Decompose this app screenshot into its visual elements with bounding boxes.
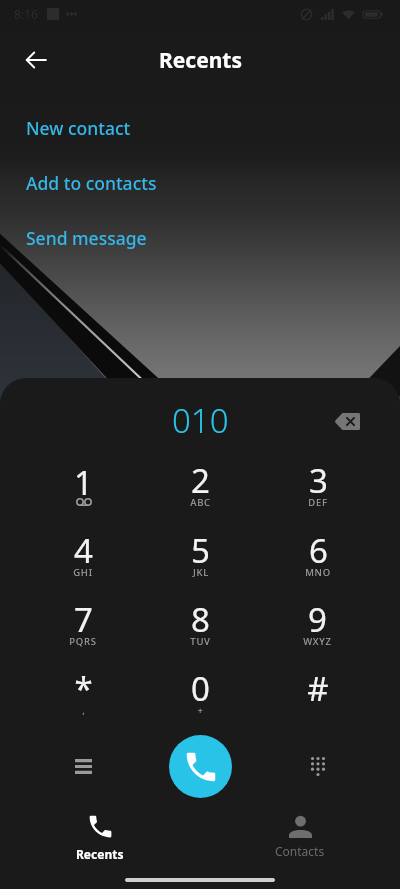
staticText: Recents xyxy=(159,46,242,75)
button[interactable]: * xyxy=(24,660,142,729)
button[interactable]: New contact xyxy=(0,100,400,155)
button[interactable]: Dialpad xyxy=(294,742,342,790)
staticText: # xyxy=(307,666,329,711)
staticText: WXYZ xyxy=(303,635,332,648)
staticText: New contact xyxy=(26,116,131,140)
staticText: 1 xyxy=(74,460,93,505)
staticText: TUV xyxy=(190,635,211,648)
staticText: ABC xyxy=(190,496,211,509)
staticText: 3 xyxy=(309,458,328,503)
staticText: 7 xyxy=(74,597,93,642)
button[interactable]: # xyxy=(259,660,376,729)
staticText: 8 xyxy=(191,597,210,642)
staticText: JKL xyxy=(193,566,209,579)
staticText: 010 xyxy=(172,398,229,443)
staticText: GHI xyxy=(73,566,93,579)
button[interactable]: 4 xyxy=(24,522,142,591)
staticText: Recents xyxy=(76,846,124,862)
button[interactable]: 2 xyxy=(142,451,259,522)
button[interactable]: 8 xyxy=(142,591,259,660)
staticText: Add to contacts xyxy=(26,171,157,195)
button[interactable]: Back xyxy=(12,36,60,84)
staticText: 8:16 xyxy=(14,6,38,22)
button[interactable]: 5 xyxy=(142,522,259,591)
staticText: 0 xyxy=(191,666,210,711)
button[interactable]: 9 xyxy=(259,591,376,660)
staticText: * xyxy=(74,666,93,711)
button[interactable]: Call xyxy=(169,735,232,798)
button[interactable]: 1 xyxy=(24,451,142,522)
button[interactable]: 7 xyxy=(24,591,142,660)
button[interactable]: 0 xyxy=(142,660,259,729)
button[interactable]: Add to contacts xyxy=(0,155,400,210)
staticText: Send message xyxy=(26,226,147,250)
staticText: , xyxy=(82,704,86,717)
staticText: 5 xyxy=(191,528,210,573)
staticText: 2 xyxy=(191,458,210,503)
button[interactable]: 6 xyxy=(259,522,376,591)
button[interactable]: Contacts xyxy=(200,808,400,866)
staticText: 6 xyxy=(309,528,328,573)
staticText: + xyxy=(197,704,204,717)
staticText: 4 xyxy=(74,528,93,573)
staticText: MNO xyxy=(305,566,331,579)
staticText: 9 xyxy=(308,597,327,642)
staticText: PQRS xyxy=(69,635,97,648)
staticText: Contacts xyxy=(275,843,325,859)
button[interactable]: Backspace xyxy=(327,401,367,441)
button[interactable]: More options xyxy=(59,742,107,790)
staticText: DEF xyxy=(308,496,328,509)
button[interactable]: 3 xyxy=(259,451,376,522)
button[interactable]: Send message xyxy=(0,210,400,265)
button[interactable]: Recents xyxy=(0,808,200,866)
